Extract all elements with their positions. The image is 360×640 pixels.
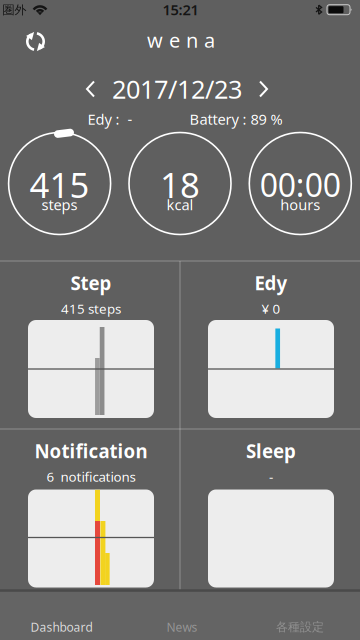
staticText: 6 notifications	[46, 468, 135, 485]
staticText: 15:21	[162, 0, 198, 19]
staticText: Step	[70, 271, 111, 295]
button[interactable]: News	[127, 614, 237, 640]
button[interactable]	[18, 24, 52, 58]
button[interactable]: Sleep	[181, 430, 359, 596]
button[interactable]	[251, 77, 275, 101]
staticText: wena	[147, 27, 215, 53]
staticText: News	[166, 619, 197, 635]
staticText: hours	[280, 195, 320, 214]
staticText: 18	[160, 161, 200, 207]
staticText: Edy : -	[87, 109, 132, 129]
button[interactable]: Dashboard	[6, 614, 116, 640]
staticText: steps	[42, 195, 78, 214]
staticText: 415 steps	[61, 300, 121, 317]
button[interactable]	[79, 77, 103, 101]
button[interactable]: 2017/12/23	[112, 72, 242, 106]
staticText: Edy	[254, 271, 287, 295]
staticText: 圏外	[2, 3, 26, 17]
staticText: Sleep	[246, 439, 296, 463]
staticText: Battery : 89 %	[189, 109, 282, 129]
button[interactable]: Notification	[1, 430, 179, 596]
staticText: -	[269, 468, 273, 485]
staticText: Notification	[34, 439, 147, 463]
button[interactable]: 各種設定	[245, 614, 355, 640]
staticText: Dashboard	[30, 619, 92, 635]
button[interactable]: Step	[1, 262, 179, 428]
staticText: ¥ 0	[261, 300, 280, 317]
staticText: 415	[30, 161, 90, 207]
button[interactable]: Edy	[181, 262, 359, 428]
staticText: 2017/12/23	[112, 72, 242, 106]
staticText: kcal	[166, 195, 193, 214]
staticText: 各種設定	[276, 620, 324, 634]
staticText: 00:00	[260, 163, 341, 206]
